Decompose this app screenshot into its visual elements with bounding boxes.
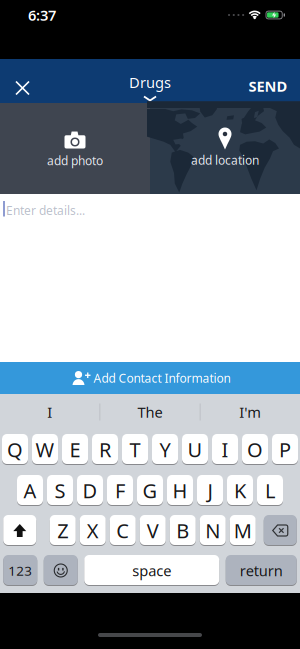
staticText: D (82, 477, 97, 504)
button[interactable]: space (84, 555, 219, 586)
button[interactable]: F (107, 475, 133, 506)
staticText: S (54, 477, 65, 504)
staticText: F (115, 477, 125, 504)
button[interactable]: Y (152, 434, 178, 465)
button[interactable]: W (32, 434, 58, 465)
staticText: K (234, 477, 246, 504)
button[interactable]: P (272, 434, 298, 465)
staticText: L (265, 477, 275, 504)
button[interactable]: X (80, 515, 106, 546)
staticText: Y (159, 436, 170, 463)
button[interactable]: M (230, 515, 256, 546)
staticText: Q (7, 436, 23, 463)
button[interactable]: H (167, 475, 193, 506)
button[interactable]: E (62, 434, 88, 465)
button[interactable]: N (200, 515, 226, 546)
button[interactable]: K (227, 475, 253, 506)
staticText: J (207, 477, 212, 504)
staticText: return (240, 561, 283, 580)
staticText: R (99, 436, 111, 463)
staticText: M (234, 517, 252, 544)
staticText: O (247, 436, 263, 463)
button[interactable]: add photo (0, 103, 150, 194)
button[interactable]: I (212, 434, 238, 465)
button[interactable]: D (77, 475, 103, 506)
button[interactable]: I (0, 394, 100, 430)
button[interactable]: Delete (264, 515, 297, 546)
button[interactable]: J (197, 475, 223, 506)
staticText: G (142, 477, 157, 504)
button[interactable]: SEND (248, 66, 300, 96)
staticText: I'm (239, 402, 261, 422)
button[interactable]: C (110, 515, 136, 546)
staticText: H (172, 477, 187, 504)
button[interactable]: return (226, 555, 297, 586)
staticText: A (23, 477, 36, 504)
staticText: B (176, 517, 189, 544)
button[interactable]: U (182, 434, 208, 465)
staticText: T (129, 436, 140, 463)
staticText: E (69, 436, 80, 463)
staticText: Add Contact Information (93, 370, 230, 386)
staticText: Drugs (129, 72, 171, 92)
staticText: I (47, 402, 52, 422)
staticText: P (279, 436, 291, 463)
button[interactable]: Q (2, 434, 28, 465)
staticText: Enter details... (6, 202, 85, 218)
staticText: The (137, 402, 162, 422)
button[interactable]: S (47, 475, 73, 506)
button[interactable]: V (140, 515, 166, 546)
button[interactable]: 123 (3, 555, 37, 586)
button[interactable]: I'm (200, 394, 300, 430)
button[interactable]: L (257, 475, 283, 506)
button[interactable]: The (100, 394, 200, 430)
button[interactable]: Close (0, 67, 29, 94)
staticText: X (87, 517, 99, 544)
button[interactable]: Z (50, 515, 76, 546)
button[interactable]: Shift (3, 515, 36, 546)
button[interactable]: O (242, 434, 268, 465)
staticText: 6:37 (28, 5, 56, 25)
button[interactable]: B (170, 515, 196, 546)
staticText: space (132, 561, 171, 580)
staticText: C (116, 517, 129, 544)
button[interactable]: R (92, 434, 118, 465)
staticText: U (187, 436, 202, 463)
staticText: I (221, 436, 228, 463)
staticText: Z (57, 517, 68, 544)
staticText: SEND (248, 76, 287, 96)
button[interactable]: G (137, 475, 163, 506)
button[interactable]: Emoji (44, 555, 78, 586)
button[interactable]: add location (150, 103, 300, 194)
staticText: add photo (47, 152, 103, 168)
button[interactable]: A (17, 475, 43, 506)
staticText: V (147, 517, 159, 544)
button[interactable]: Change category (129, 72, 171, 100)
staticText: add location (191, 152, 259, 168)
staticText: W (35, 436, 54, 463)
staticText: N (205, 517, 220, 544)
button[interactable]: Add Contact Information (0, 362, 300, 394)
staticText: 123 (8, 562, 32, 579)
button[interactable]: T (122, 434, 148, 465)
